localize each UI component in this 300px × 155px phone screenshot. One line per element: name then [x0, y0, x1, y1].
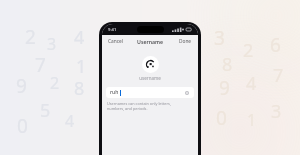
staticText: 4: [74, 25, 85, 50]
staticText: 9: [219, 75, 230, 101]
staticText: 3: [271, 99, 282, 124]
staticText: 3: [214, 25, 225, 51]
staticText: Cancel: [108, 38, 123, 45]
staticText: 1: [76, 54, 87, 79]
staticText: Usernames can contain only letters, numb…: [107, 101, 171, 111]
staticText: 1: [247, 109, 257, 131]
staticText: 7: [35, 52, 46, 78]
staticText: 2: [25, 24, 36, 50]
staticText: Username: [137, 38, 164, 45]
staticText: 0: [17, 113, 28, 139]
staticText: 9: [16, 73, 27, 99]
button[interactable]: Clear text: [184, 90, 190, 96]
staticText: 0: [216, 105, 227, 131]
staticText: 8: [222, 52, 233, 77]
staticText: 2: [50, 72, 60, 94]
staticText: 6: [270, 32, 281, 58]
button[interactable]: ruh: [106, 87, 194, 98]
button[interactable]: Done: [178, 37, 193, 46]
staticText: 3: [47, 33, 57, 55]
staticText: 5: [40, 98, 51, 123]
staticText: 7: [273, 63, 284, 88]
staticText: 8: [74, 76, 85, 101]
staticText: 4: [246, 71, 257, 96]
staticText: Done: [179, 38, 192, 45]
button[interactable]: Cancel: [107, 37, 124, 46]
staticText: 4: [65, 110, 75, 132]
staticText: 9:41: [108, 27, 117, 33]
staticText: username: [102, 75, 198, 81]
staticText: ruh: [110, 89, 119, 96]
staticText: 2: [243, 38, 254, 63]
button[interactable]: App logo: [142, 56, 159, 73]
